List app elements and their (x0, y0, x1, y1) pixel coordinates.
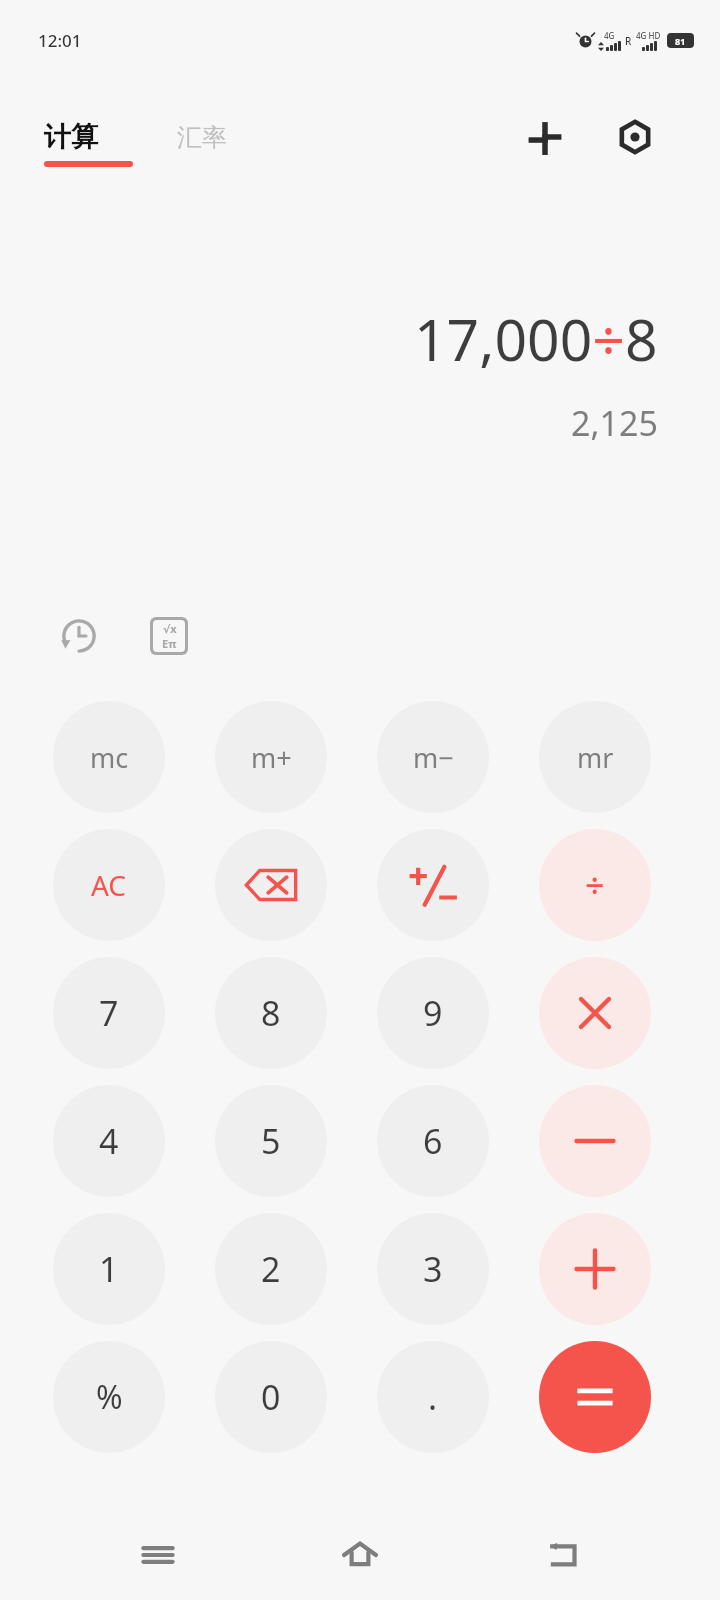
button[interactable]: Equals (539, 1341, 651, 1453)
staticText: 6 (423, 1118, 443, 1164)
button[interactable]: % (53, 1341, 165, 1453)
button[interactable]: Subtract (539, 1085, 651, 1197)
staticText: 4G (604, 30, 615, 41)
button[interactable]: mc (53, 701, 165, 813)
staticText: 1 (99, 1246, 119, 1292)
staticText: m+ (251, 739, 292, 776)
staticText: m− (413, 739, 454, 776)
button[interactable]: 2 (215, 1213, 327, 1325)
button[interactable]: Home (315, 1510, 405, 1600)
staticText: 汇率 (177, 122, 227, 153)
button[interactable]: Delete (215, 829, 327, 941)
staticText: mc (90, 739, 129, 776)
staticText: 7 (99, 990, 119, 1036)
staticText: 0 (261, 1374, 281, 1420)
button[interactable]: 3 (377, 1213, 489, 1325)
button[interactable]: 汇率 (177, 122, 227, 153)
staticText: 计算 (44, 120, 98, 154)
staticText: AC (91, 866, 127, 904)
button[interactable]: 8 (215, 957, 327, 1069)
button[interactable]: AC (53, 829, 165, 941)
staticText: R (625, 34, 632, 48)
staticText: 3 (423, 1246, 443, 1292)
staticText: 2 (261, 1246, 281, 1292)
button[interactable]: ÷ (539, 829, 651, 941)
staticText: 12:01 (38, 29, 82, 52)
button[interactable]: Back (518, 1510, 608, 1600)
staticText: Eπ (162, 636, 177, 651)
button[interactable]: 9 (377, 957, 489, 1069)
button[interactable]: m+ (215, 701, 327, 813)
staticText: ÷ (585, 862, 605, 908)
button[interactable]: 1 (53, 1213, 165, 1325)
staticText: 9 (423, 990, 443, 1036)
button[interactable]: 4 (53, 1085, 165, 1197)
button[interactable]: Multiply (539, 957, 651, 1069)
button[interactable]: 计算 (44, 120, 133, 167)
staticText: 2,125 (571, 400, 658, 446)
staticText: 4 (99, 1118, 119, 1164)
staticText: 4G HD (636, 30, 661, 41)
button[interactable]: m− (377, 701, 489, 813)
staticText: 17,000÷8 (414, 300, 658, 378)
button[interactable]: mr (539, 701, 651, 813)
button[interactable]: 5 (215, 1085, 327, 1197)
button[interactable]: Recents (113, 1510, 203, 1600)
staticText: mr (577, 739, 614, 776)
button[interactable]: 0 (215, 1341, 327, 1453)
button[interactable]: Scientific (138, 605, 200, 667)
button[interactable]: Unit converter (505, 104, 585, 170)
staticText: 81 (675, 35, 686, 47)
button[interactable]: Settings (595, 104, 675, 170)
staticText: % (96, 1375, 123, 1419)
button[interactable]: History (48, 605, 110, 667)
staticText: 8 (261, 990, 281, 1036)
staticText: √x (163, 621, 177, 636)
button[interactable]: Add (539, 1213, 651, 1325)
staticText: 5 (261, 1118, 281, 1164)
button[interactable]: 6 (377, 1085, 489, 1197)
button[interactable]: . (377, 1341, 489, 1453)
button[interactable]: Plus minus (377, 829, 489, 941)
staticText: . (428, 1374, 438, 1420)
button[interactable]: 7 (53, 957, 165, 1069)
